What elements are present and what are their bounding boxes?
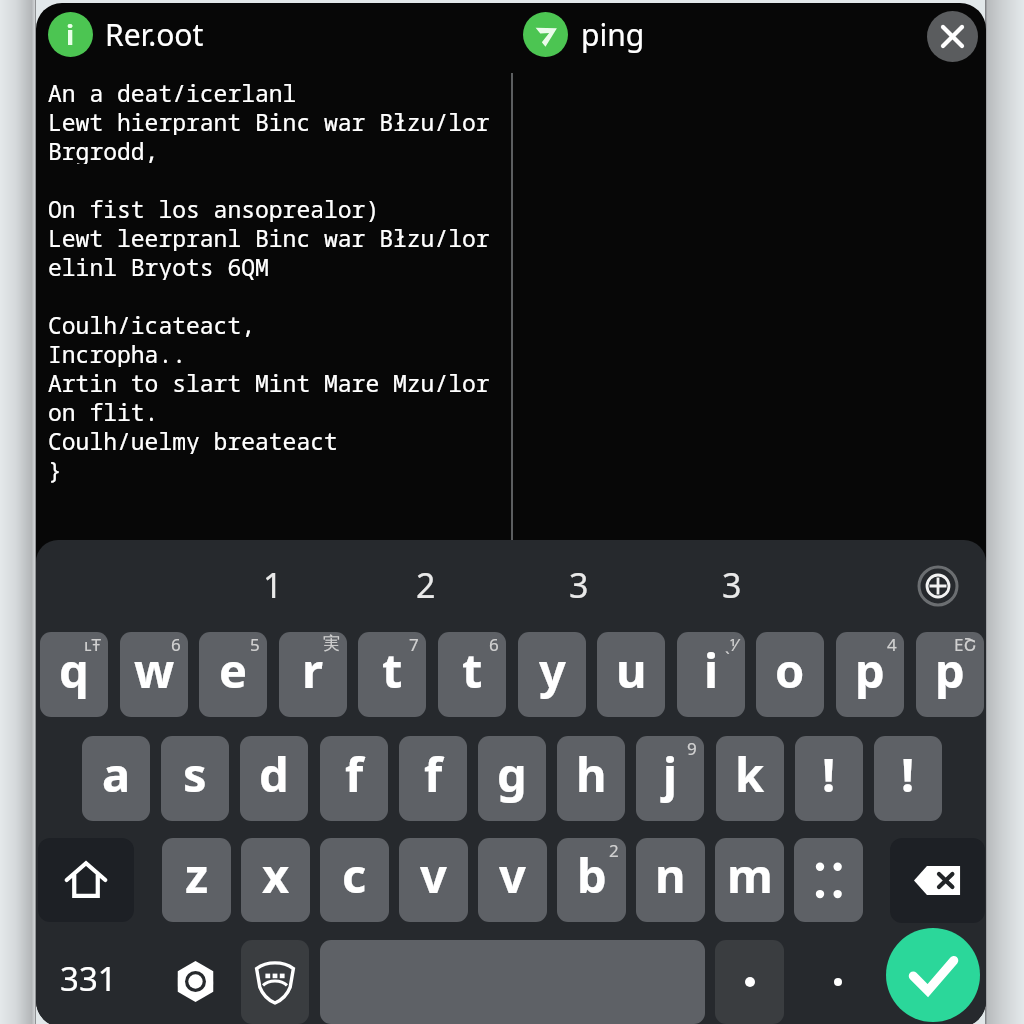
button[interactable]: ! (874, 736, 942, 821)
staticText: 2 (609, 839, 619, 862)
button[interactable]: 5 (199, 632, 267, 717)
button[interactable]: c (320, 838, 389, 922)
staticText: 2 (416, 562, 436, 608)
button[interactable]: 2 (349, 540, 502, 633)
button[interactable]: a (82, 736, 150, 821)
button[interactable]: v (478, 838, 547, 922)
staticText: e (219, 638, 248, 702)
staticText: 9 (687, 737, 697, 760)
button[interactable]: ping (523, 3, 645, 69)
staticText: t (382, 638, 403, 702)
staticText: j (663, 742, 678, 806)
staticText: On fist los ansoprealor) (48, 193, 380, 222)
staticText: o (775, 638, 805, 702)
staticText: m (727, 843, 773, 907)
staticText: 5 (250, 633, 260, 656)
staticText: Lewt leerpranl Binc war Bl̷zu/lor (48, 222, 490, 251)
button[interactable]: 9 (636, 736, 704, 821)
button[interactable]: z (162, 838, 231, 922)
button[interactable]: Settings (172, 958, 218, 1004)
staticText: 実 (323, 633, 340, 654)
staticText: ˎ⅟ (725, 633, 738, 656)
button[interactable]: o (756, 632, 824, 717)
button[interactable]: Close (927, 11, 978, 62)
button[interactable]: y (518, 632, 586, 717)
button[interactable]: g (478, 736, 546, 821)
staticText: k (735, 742, 765, 806)
button[interactable]: ! (795, 736, 863, 821)
staticText: ! (901, 742, 915, 806)
staticText: x (262, 843, 290, 907)
staticText: h (576, 742, 607, 806)
button[interactable]: Confirm (886, 928, 980, 1022)
staticText: Artin to slart Mint Mare Mzu/lor (48, 367, 490, 396)
button[interactable] (794, 838, 863, 922)
button[interactable]: m (715, 838, 784, 922)
staticText: t (462, 638, 483, 702)
staticText: Rer.oot (105, 14, 204, 55)
staticText: Lewt hierprant Binc war Bl̷zu/lor (48, 106, 490, 135)
button[interactable]: More suggestions (914, 562, 962, 610)
staticText: An a deat/icerlanl (48, 77, 297, 106)
staticText: 6 (489, 633, 499, 656)
button[interactable]: 実 (279, 632, 347, 717)
button[interactable]: 6 (120, 632, 188, 717)
button[interactable]: 2 (557, 838, 626, 922)
button[interactable]: 6 (438, 632, 506, 717)
staticText: y (539, 638, 566, 702)
staticText: ʟŦ (84, 633, 101, 656)
staticText: u (616, 638, 647, 702)
button[interactable]: k (716, 736, 784, 821)
staticText: v (499, 843, 526, 907)
button[interactable]: f (320, 736, 388, 821)
button[interactable]: 1 (196, 540, 349, 633)
button[interactable]: Space (320, 940, 705, 1024)
staticText: p (935, 638, 965, 702)
button[interactable]: 3 (502, 540, 655, 633)
button[interactable] (715, 940, 784, 1024)
staticText: q (59, 638, 89, 702)
staticText: ΕՇ (954, 633, 977, 656)
staticText: w (134, 638, 175, 702)
button[interactable]: Shift (38, 838, 134, 922)
button[interactable]: u (597, 632, 665, 717)
staticText: d (259, 742, 289, 806)
button[interactable]: 7 (358, 632, 426, 717)
button[interactable]: x (241, 838, 310, 922)
staticText: b (577, 843, 607, 907)
button[interactable]: ʟŦ (40, 632, 108, 717)
staticText: i (66, 16, 75, 53)
button[interactable]: ΕՇ (916, 632, 984, 717)
button[interactable]: h (557, 736, 625, 821)
button[interactable]: s (161, 736, 229, 821)
button[interactable]: 331 (60, 956, 117, 1001)
button[interactable]: 3 (655, 540, 808, 633)
staticText: r (302, 638, 324, 702)
staticText: Brgrodd, (48, 135, 159, 164)
button[interactable] (806, 940, 870, 1024)
button[interactable]: d (240, 736, 308, 821)
button[interactable]: ˎ⅟ (677, 632, 745, 717)
staticText: c (342, 843, 367, 907)
staticText: n (655, 843, 686, 907)
button[interactable]: Security (241, 940, 309, 1024)
staticText: s (183, 742, 207, 806)
staticText: } (48, 454, 62, 483)
button[interactable]: n (636, 838, 705, 922)
staticText: 1 (263, 562, 283, 608)
staticText: elinl Bryots 6QM (48, 251, 269, 280)
button[interactable]: Backspace (890, 838, 985, 923)
staticText: 6 (171, 633, 181, 656)
staticText: Incropha.. (48, 338, 187, 367)
staticText: ! (822, 742, 836, 806)
button[interactable]: v (399, 838, 468, 922)
staticText: g (497, 742, 527, 806)
button[interactable]: f (399, 736, 467, 821)
button[interactable]: i (48, 3, 204, 69)
staticText: 3 (722, 562, 742, 608)
staticText: i (704, 638, 719, 702)
button[interactable]: 4 (836, 632, 904, 717)
staticText: 7 (409, 633, 419, 656)
staticText: Coulh/icateact, (48, 309, 256, 338)
staticText: ping (581, 14, 645, 55)
